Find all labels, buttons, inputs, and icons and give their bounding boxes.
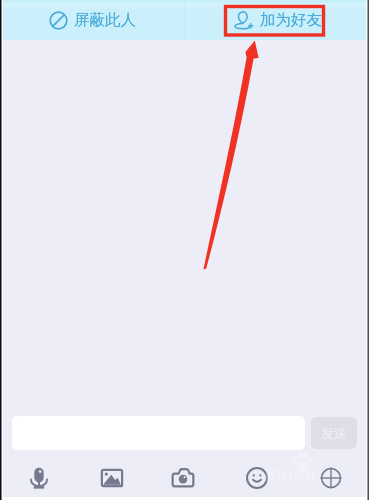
button[interactable]: 加为好友 xyxy=(185,0,369,40)
button[interactable]: Emoji xyxy=(237,458,277,497)
button[interactable]: 发送 xyxy=(311,417,357,449)
staticText: 加为好友 xyxy=(260,10,322,30)
staticText: 发送 xyxy=(321,425,347,441)
button[interactable]: Camera xyxy=(163,458,203,497)
button[interactable]: Voice xyxy=(19,458,59,497)
button[interactable]: 屏蔽此人 xyxy=(0,0,184,40)
staticText: 屏蔽此人 xyxy=(74,10,136,30)
button[interactable]: Gallery xyxy=(92,458,132,497)
button[interactable]: More xyxy=(311,458,351,497)
staticText: Baidu xyxy=(265,462,317,487)
